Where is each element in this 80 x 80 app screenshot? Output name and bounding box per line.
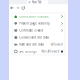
- staticText: Allowed: [51, 43, 63, 46]
- staticText: Connection is secure: [19, 15, 49, 18]
- button[interactable]: Flash and site data: [12, 41, 65, 48]
- button[interactable]: Certificate is valid: [12, 27, 65, 34]
- button[interactable]: Site settings: [12, 48, 65, 55]
- button[interactable]: Connection is secure: [12, 13, 65, 20]
- button[interactable]: New Tab: [27, 0, 48, 4]
- staticText: Cookies and site data: [19, 36, 48, 39]
- button[interactable]: Prevent page visibility: [12, 20, 65, 27]
- staticText: New Tab: [32, 0, 42, 4]
- staticText: Flash and site data: [19, 43, 43, 46]
- button[interactable]: Back: [10, 6, 14, 10]
- staticText: Not Allowed: [41, 50, 59, 53]
- button[interactable]: Forward: [16, 6, 20, 10]
- staticText: Site settings: [19, 50, 36, 53]
- button[interactable]: Cookies and site data: [12, 34, 65, 41]
- staticText: Prevent page visibility: [19, 22, 49, 25]
- staticText: Certificate is valid: [19, 29, 43, 32]
- button[interactable]: Reload: [21, 6, 25, 10]
